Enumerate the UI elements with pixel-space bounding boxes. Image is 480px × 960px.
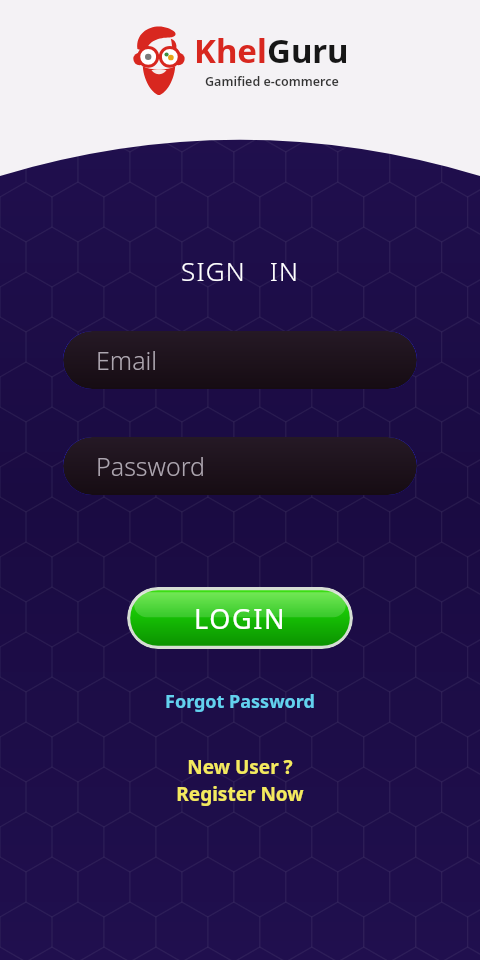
- button[interactable]: New User ?: [162, 751, 318, 810]
- staticText: SIGN IN: [181, 253, 300, 288]
- staticText: Khel: [194, 28, 267, 73]
- staticText: Email: [96, 343, 158, 377]
- staticText: Forgot Password: [165, 689, 315, 714]
- staticText: Gamified e-commerce: [205, 73, 339, 90]
- button[interactable]: LOGIN: [127, 587, 353, 649]
- staticText: Guru: [267, 28, 349, 73]
- staticText: Password: [96, 449, 205, 483]
- staticText: LOGIN: [194, 600, 287, 637]
- staticText: New User ?: [187, 754, 293, 780]
- button[interactable]: Password: [63, 437, 417, 495]
- button[interactable]: Forgot Password: [153, 685, 327, 718]
- staticText: Register Now: [176, 781, 304, 807]
- button[interactable]: Email: [63, 331, 417, 389]
